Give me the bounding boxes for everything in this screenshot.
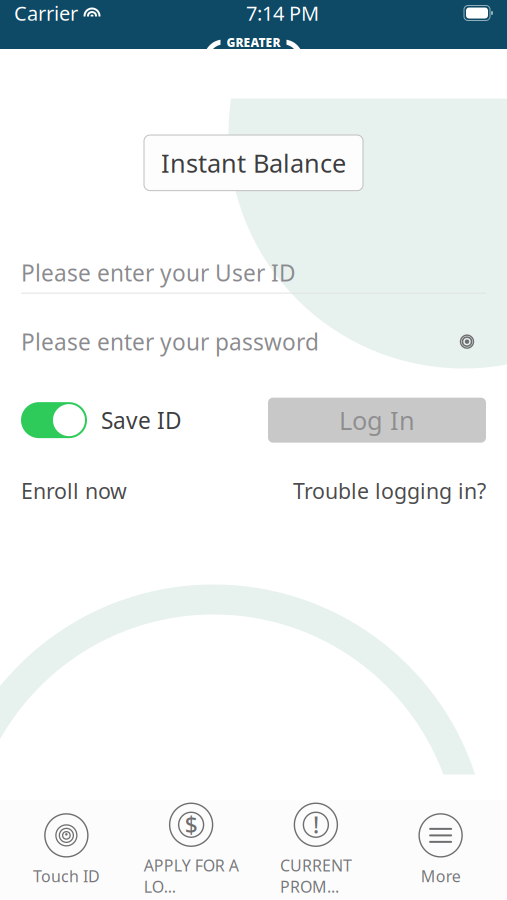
staticText: CURRENT PROM... — [280, 855, 352, 897]
button[interactable]: More — [378, 807, 503, 893]
staticText: 7:14 PM — [246, 0, 319, 26]
staticText: ! — [313, 810, 319, 840]
staticText: Please enter your User ID — [21, 258, 296, 288]
button[interactable]: Enroll now — [21, 473, 127, 509]
button[interactable]: ! — [253, 797, 378, 900]
button[interactable]: Show password — [448, 325, 486, 359]
staticText: Enroll now — [21, 477, 127, 505]
staticText: Save ID — [101, 405, 182, 435]
button[interactable]: $ — [129, 797, 254, 900]
button[interactable]: Instant Balance — [144, 135, 363, 191]
staticText: APPLY FOR A LO... — [144, 855, 239, 897]
button[interactable]: Trouble logging in? — [293, 473, 486, 509]
staticText: Touch ID — [33, 865, 100, 887]
staticText: Please enter your password — [21, 327, 319, 357]
button[interactable]: Touch ID — [4, 807, 129, 893]
button[interactable]: Save ID — [21, 402, 182, 438]
staticText: Instant Balance — [161, 146, 346, 180]
staticText: GREATER — [226, 34, 280, 50]
staticText: $ — [185, 810, 198, 840]
staticText: More — [421, 865, 461, 887]
staticText: Carrier — [14, 0, 78, 26]
button[interactable]: Log In — [268, 398, 486, 443]
staticText: Log In — [339, 403, 415, 437]
staticText: Trouble logging in? — [293, 477, 486, 505]
